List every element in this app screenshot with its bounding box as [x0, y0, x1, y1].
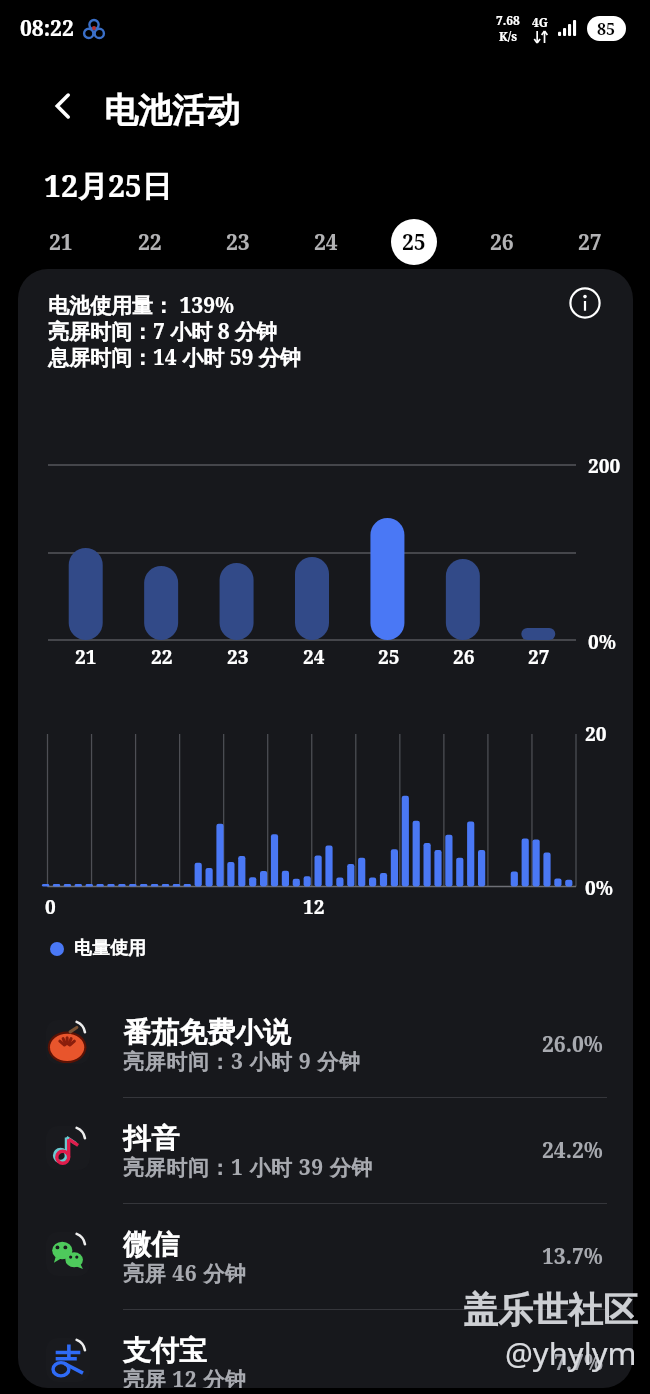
button[interactable]: 微信	[18, 1225, 633, 1331]
staticText: 27	[528, 644, 550, 670]
staticText: 23	[227, 644, 249, 670]
staticText: 7.7%	[554, 1348, 603, 1377]
button[interactable]: 23	[194, 216, 282, 268]
staticText: 0%	[585, 875, 613, 901]
button[interactable]: 22	[105, 216, 194, 268]
staticText: 26.0%	[542, 1030, 603, 1059]
staticText: 20	[585, 721, 607, 747]
button[interactable]: 抖音	[18, 1119, 633, 1225]
staticText: 08:22	[20, 14, 74, 43]
button[interactable]: Back	[39, 82, 87, 130]
button[interactable]: 支付宝	[18, 1331, 633, 1388]
staticText: 21	[75, 644, 97, 670]
staticText: 亮屏时间：1 小时 39 分钟	[123, 1153, 373, 1182]
button[interactable]: Info	[566, 284, 604, 322]
staticText: 85	[597, 18, 616, 40]
staticText: 0	[45, 894, 56, 920]
staticText: 电池活动	[104, 89, 240, 132]
button[interactable]: 26	[458, 216, 546, 268]
staticText: 21	[49, 228, 73, 257]
staticText: 0%	[588, 629, 616, 655]
button[interactable]: 27	[546, 216, 634, 268]
button[interactable]: 21	[16, 216, 105, 268]
button[interactable]: 25	[370, 216, 458, 268]
staticText: 27	[578, 228, 602, 257]
staticText: 电池使用量： 139%	[48, 291, 235, 320]
staticText: 24	[303, 644, 325, 670]
staticText: @yhylym	[505, 1332, 637, 1374]
staticText: 抖音	[123, 1121, 179, 1156]
staticText: 26	[490, 228, 514, 257]
staticText: 12	[303, 894, 325, 920]
staticText: 23	[226, 228, 250, 257]
staticText: 26	[453, 644, 475, 670]
staticText: 25	[402, 228, 426, 257]
staticText: 7.68	[496, 12, 520, 28]
staticText: 息屏时间：14 小时 59 分钟	[48, 343, 301, 372]
staticText: 亮屏时间：7 小时 8 分钟	[48, 317, 278, 346]
staticText: 4G	[532, 14, 549, 30]
staticText: 200	[588, 453, 621, 479]
staticText: 亮屏时间：3 小时 9 分钟	[123, 1047, 361, 1076]
staticText: 25	[378, 644, 400, 670]
staticText: 24.2%	[542, 1136, 603, 1165]
button[interactable]: 番茄免费小说	[18, 1013, 633, 1119]
staticText: 亮屏 46 分钟	[123, 1259, 247, 1288]
staticText: 番茄免费小说	[123, 1015, 291, 1050]
staticText: 22	[151, 644, 173, 670]
staticText: 支付宝	[123, 1333, 207, 1368]
staticText: 13.7%	[542, 1242, 603, 1271]
staticText: 24	[314, 228, 338, 257]
staticText: 电量使用	[74, 937, 146, 960]
button[interactable]: 24	[282, 216, 370, 268]
staticText: 盖乐世社区	[463, 1288, 638, 1332]
staticText: 微信	[123, 1227, 179, 1262]
staticText: 亮屏 12 分钟	[123, 1365, 247, 1388]
staticText: 22	[138, 228, 162, 257]
staticText: K/s	[499, 28, 518, 44]
staticText: 12月25日	[44, 165, 172, 206]
